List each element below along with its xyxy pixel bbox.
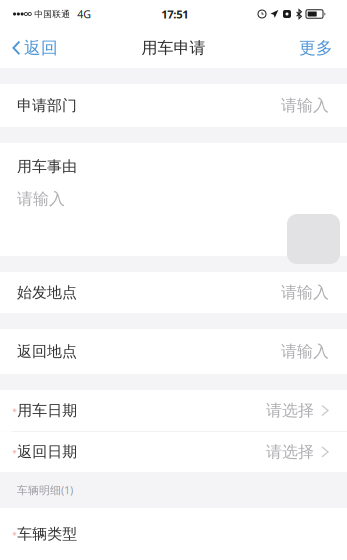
staticText: 4G: [77, 7, 91, 21]
staticText: 车辆类型: [17, 525, 77, 543]
staticText: 始发地点: [17, 283, 77, 302]
staticText: 用车日期: [17, 401, 77, 420]
staticText: 请选择: [266, 400, 314, 421]
button[interactable]: ✳: [0, 390, 347, 431]
button[interactable]: 申请部门: [0, 84, 347, 127]
staticText: 申请部门: [17, 96, 77, 115]
button[interactable]: 更多: [289, 28, 347, 68]
staticText: 用车事由: [17, 157, 77, 176]
staticText: 车辆明细(1): [17, 483, 73, 497]
staticText: 返回日期: [17, 442, 77, 461]
button[interactable]: 始发地点: [0, 272, 347, 313]
button[interactable]: ✳: [0, 432, 347, 472]
staticText: ✳: [12, 530, 17, 537]
staticText: 更多: [299, 37, 333, 58]
button[interactable]: 返回地点: [0, 329, 347, 374]
staticText: 返回: [24, 37, 58, 58]
staticText: ✳: [12, 448, 17, 455]
button[interactable]: ✳: [0, 508, 347, 560]
staticText: 请输入: [281, 95, 329, 116]
staticText: ✳: [12, 407, 17, 414]
staticText: 用车申请: [141, 38, 205, 58]
staticText: 返回地点: [17, 342, 77, 361]
button[interactable]: 用车事由: [0, 143, 347, 256]
staticText: 请输入: [281, 341, 329, 362]
staticText: 请输入: [281, 282, 329, 303]
staticText: 中国联通: [34, 8, 70, 19]
staticText: 17:51: [161, 6, 188, 22]
staticText: 请输入: [17, 189, 65, 209]
staticText: 请选择: [266, 442, 314, 462]
button[interactable]: 添加照片: [287, 214, 340, 264]
button[interactable]: 返回: [0, 28, 68, 68]
